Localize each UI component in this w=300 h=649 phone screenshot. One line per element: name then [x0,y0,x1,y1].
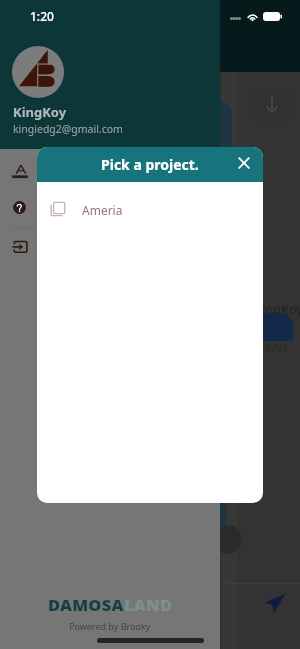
staticText: Powered by Brooky [69,620,151,632]
button[interactable]: Close [234,153,254,173]
staticText: DAMOSA [48,593,124,615]
button[interactable]: Help [0,188,220,227]
staticText: 1:20 [30,8,54,24]
staticText: 2:09 PM [251,341,287,355]
button[interactable]: Logout [0,228,220,268]
staticText: LAND [124,593,173,615]
button[interactable]: Download [254,88,290,122]
button[interactable]: Send [265,594,285,614]
staticText: kingiedg2@gmail.com [13,122,123,136]
staticText: KingKoy [13,103,67,121]
button[interactable]: Text size [0,156,220,188]
button[interactable]: Ameria [37,182,263,237]
staticText: Pick a project. [101,155,199,174]
staticText: KingKoy [254,301,300,317]
staticText: Ameria [82,202,123,218]
